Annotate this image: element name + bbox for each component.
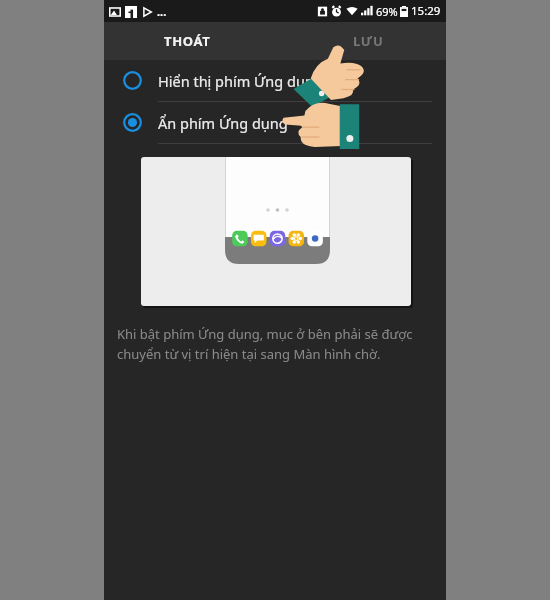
button[interactable]: Ẩn phím Ứng dụng [104, 102, 446, 143]
staticText: Hiển thị phím Ứng dụng [158, 71, 323, 91]
button[interactable]: THOÁT [154, 23, 221, 59]
button[interactable]: Hiển thị phím Ứng dụng [104, 60, 446, 101]
staticText: LƯU [353, 32, 384, 50]
staticText: ... [157, 4, 167, 19]
staticText: Ẩn phím Ứng dụng [158, 113, 288, 133]
staticText: 15:29 [411, 3, 441, 19]
staticText: 69% [376, 4, 398, 19]
staticText: Khi bật phím Ứng dụng, mục ở bên phải sẽ… [117, 325, 433, 363]
button[interactable]: LƯU [343, 23, 394, 59]
staticText: THOÁT [164, 32, 211, 50]
